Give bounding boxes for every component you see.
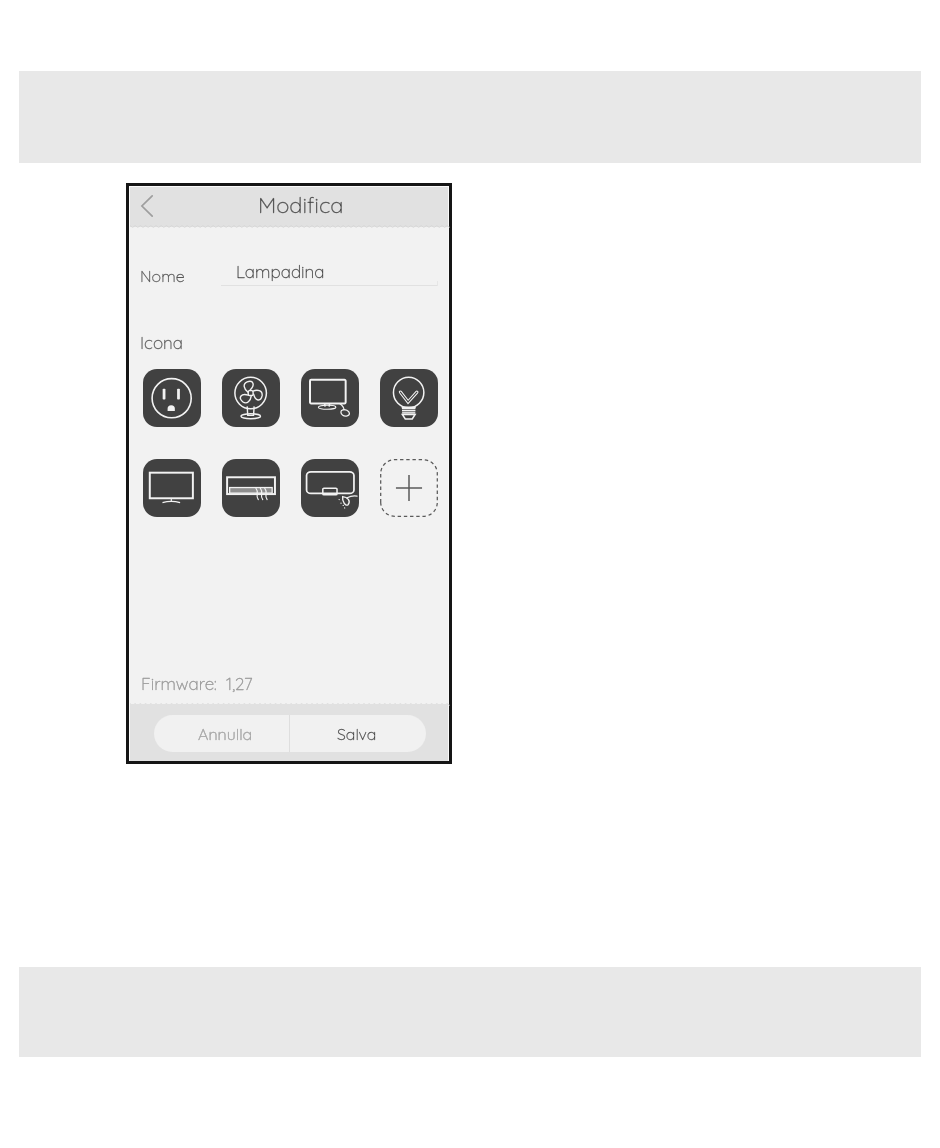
button[interactable]: Salva (290, 715, 426, 752)
staticText: Lampadina (236, 261, 325, 282)
staticText: Salva (337, 724, 377, 744)
staticText: Annulla (198, 724, 253, 744)
button[interactable]: Power socket (143, 369, 201, 427)
staticText: Nome (140, 266, 185, 286)
staticText: Salva (337, 724, 377, 744)
staticText: Modifica (258, 191, 344, 219)
button[interactable]: Television (143, 459, 201, 517)
staticText: Firmware: 1,27 (141, 673, 253, 694)
staticText: Modifica (258, 191, 344, 219)
button[interactable]: Fan (222, 369, 280, 427)
button[interactable]: Lampadina (221, 258, 438, 286)
staticText: Icona (140, 332, 183, 353)
button[interactable]: Computer (301, 369, 359, 427)
staticText: Nome (140, 266, 185, 286)
button[interactable]: Annulla (154, 715, 289, 752)
staticText: Firmware: 1,27 (141, 673, 253, 694)
button[interactable]: Air conditioner (222, 459, 280, 517)
button[interactable]: Light bulb (380, 369, 438, 427)
staticText: Annulla (198, 724, 253, 744)
button[interactable]: Back (130, 187, 163, 227)
button[interactable]: Water heater (301, 459, 359, 517)
staticText: Icona (140, 332, 183, 353)
button[interactable]: Add icon (380, 459, 438, 517)
staticText: Lampadina (236, 261, 325, 282)
